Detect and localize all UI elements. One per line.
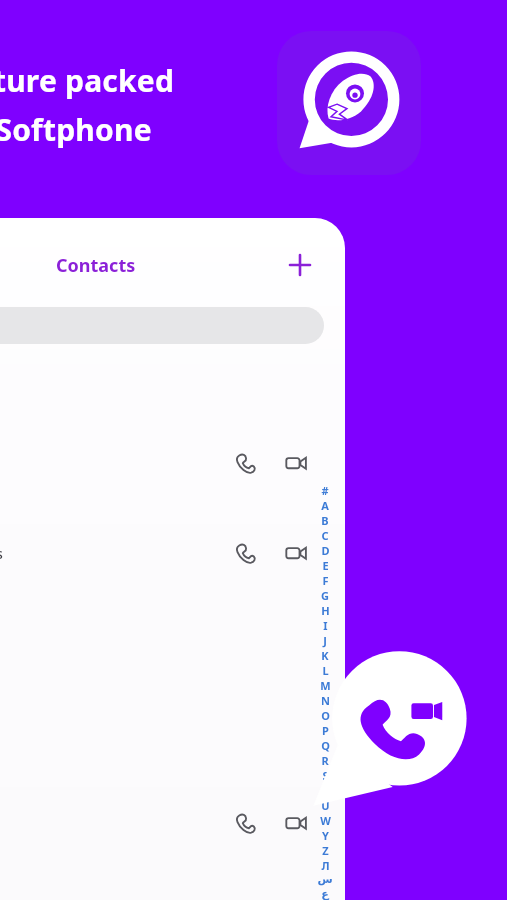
staticText: B [321,513,329,528]
staticText: Y [322,828,329,843]
staticText: O [321,708,330,723]
staticText: Z [322,843,329,858]
staticText: ع [321,888,329,900]
staticText: H [321,603,330,618]
staticText: P [322,723,329,738]
staticText: Feature packed [0,60,175,101]
button[interactable]: New call [313,648,473,808]
staticText: Л [321,858,330,873]
staticText: س [317,873,333,888]
staticText: N [321,693,330,708]
button[interactable]: Call [228,536,262,570]
staticText: W [320,813,331,828]
button[interactable]: # [314,483,336,900]
button[interactable]: Video call [279,806,313,840]
staticText: F [322,573,329,588]
staticText: I [323,618,328,633]
staticText: K [321,648,329,663]
button[interactable]: Video call [279,536,313,570]
button[interactable]: Video call [279,446,313,480]
staticText: E [322,558,329,573]
button[interactable]: Call [228,806,262,840]
button[interactable]: Call [228,446,262,480]
staticText: M [320,678,331,693]
staticText: Q [321,738,330,753]
staticText: D [321,543,330,558]
button[interactable]: App icon [277,31,421,175]
staticText: # [321,483,329,498]
button[interactable]: Contacts [56,253,136,278]
staticText: A [321,498,329,513]
staticText: G [321,588,329,603]
staticText: L [322,663,329,678]
staticText: R [321,753,329,768]
staticText: C [321,528,329,543]
staticText: J [323,633,327,648]
button[interactable]: Add contact [280,245,320,285]
staticText: s [0,544,3,563]
staticText: S [322,768,329,783]
staticText: U [321,798,330,813]
staticText: SIP Softphone [0,109,152,150]
